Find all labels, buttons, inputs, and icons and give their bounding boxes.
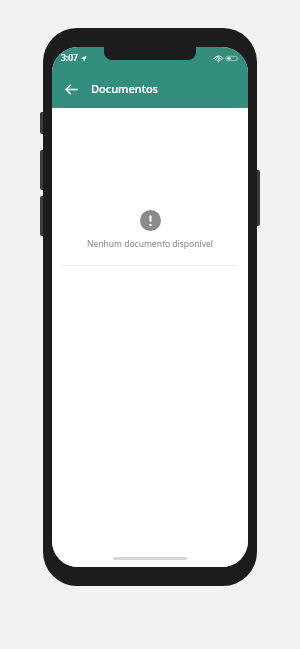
button[interactable]: Back	[58, 76, 84, 102]
staticText: Nenhum documento disponível	[87, 238, 213, 250]
staticText: Documentos	[91, 81, 158, 96]
staticText: 3:07	[61, 52, 78, 64]
